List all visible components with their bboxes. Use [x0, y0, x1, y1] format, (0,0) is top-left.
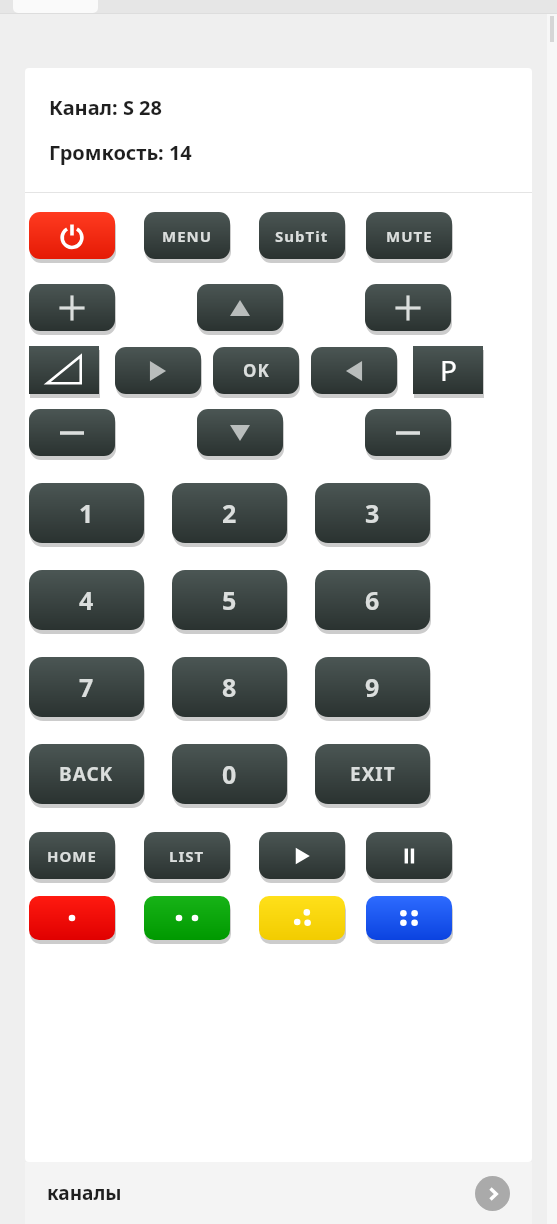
- button[interactable]: Blue: [366, 896, 452, 940]
- button[interactable]: 8: [172, 657, 287, 717]
- button[interactable]: Channel up: [365, 284, 451, 331]
- staticText: LIST: [169, 846, 205, 866]
- button[interactable]: Channel down: [365, 409, 451, 456]
- button[interactable]: Left: [115, 347, 201, 394]
- button[interactable]: Green: [144, 896, 230, 940]
- staticText: MENU: [162, 226, 213, 246]
- button[interactable]: Volume up: [29, 284, 115, 331]
- staticText: 1: [79, 496, 95, 530]
- button[interactable]: Right: [311, 347, 397, 394]
- staticText: 3: [365, 496, 381, 530]
- button[interactable]: SubTit: [259, 212, 345, 259]
- button[interactable]: LIST: [144, 832, 230, 879]
- button[interactable]: 7: [29, 657, 144, 717]
- staticText: EXIT: [350, 761, 396, 787]
- button[interactable]: 1: [29, 483, 144, 543]
- staticText: Канал: S 28: [49, 94, 162, 121]
- button[interactable]: 2: [172, 483, 287, 543]
- button[interactable]: OK: [213, 347, 299, 394]
- staticText: HOME: [47, 846, 97, 866]
- staticText: 0: [222, 757, 238, 791]
- button[interactable]: HOME: [29, 832, 115, 879]
- staticText: P: [440, 351, 457, 389]
- staticText: каналы: [47, 1180, 122, 1206]
- staticText: 6: [365, 583, 381, 617]
- button[interactable]: BACK: [29, 744, 144, 804]
- button[interactable]: Programme: [413, 346, 483, 394]
- staticText: BACK: [59, 761, 114, 787]
- button[interactable]: 9: [315, 657, 430, 717]
- button[interactable]: Red: [29, 896, 115, 940]
- button[interactable]: Yellow: [259, 896, 345, 940]
- button[interactable]: каналы: [25, 1162, 532, 1224]
- button[interactable]: MUTE: [366, 212, 452, 259]
- button[interactable]: Power: [29, 212, 115, 259]
- staticText: 7: [79, 670, 95, 704]
- staticText: SubTit: [275, 226, 329, 246]
- button[interactable]: 0: [172, 744, 287, 804]
- button[interactable]: Up: [197, 284, 283, 331]
- button[interactable]: Pause: [366, 832, 452, 879]
- staticText: Громкость: 14: [49, 139, 192, 166]
- staticText: 9: [365, 670, 381, 704]
- staticText: MUTE: [386, 226, 433, 246]
- button[interactable]: 5: [172, 570, 287, 630]
- button[interactable]: MENU: [144, 212, 230, 259]
- staticText: 5: [222, 583, 238, 617]
- button[interactable]: 3: [315, 483, 430, 543]
- staticText: OK: [243, 359, 270, 382]
- button[interactable]: 4: [29, 570, 144, 630]
- button[interactable]: Down: [197, 409, 283, 456]
- button[interactable]: Volume: [29, 346, 99, 394]
- button[interactable]: Volume down: [29, 409, 115, 456]
- staticText: 4: [79, 583, 95, 617]
- button[interactable]: Play: [259, 832, 345, 879]
- staticText: 8: [222, 670, 238, 704]
- staticText: 2: [222, 496, 238, 530]
- button[interactable]: 6: [315, 570, 430, 630]
- button[interactable]: EXIT: [315, 744, 430, 804]
